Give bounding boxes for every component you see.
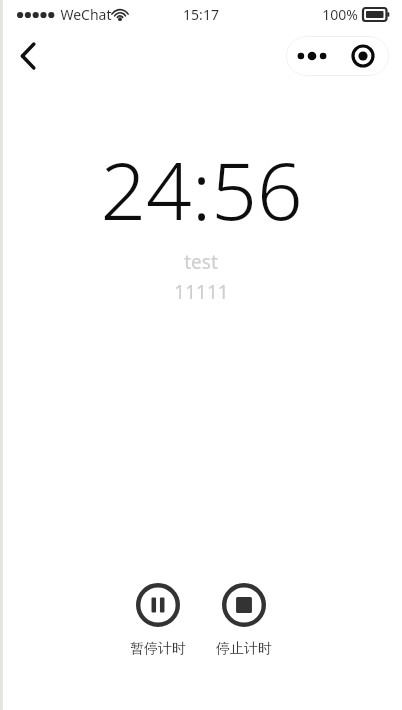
staticText: test [184, 249, 218, 275]
button[interactable]: 停止计时 [208, 580, 280, 660]
staticText: WeChat [60, 5, 112, 24]
staticText: 24:56 [100, 134, 303, 243]
staticText: 停止计时 [216, 640, 272, 658]
staticText: 11111 [174, 279, 229, 305]
staticText: 15:17 [183, 5, 219, 24]
staticText: 暂停计时 [130, 640, 186, 658]
staticText: 100% [322, 5, 358, 24]
button[interactable]: 暂停计时 [122, 580, 194, 660]
button[interactable]: Close mini program [337, 36, 389, 76]
button[interactable]: Back [6, 34, 50, 78]
button[interactable]: More [286, 36, 337, 76]
